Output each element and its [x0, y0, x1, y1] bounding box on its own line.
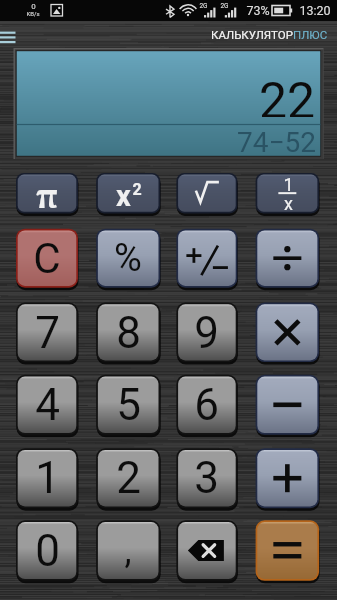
staticText: π — [36, 173, 58, 214]
button[interactable]: Divide — [256, 229, 320, 288]
button[interactable]: 6 — [176, 375, 237, 435]
button[interactable]: Pi — [16, 173, 78, 214]
staticText: 74−52 — [237, 126, 316, 152]
button[interactable]: 0 — [16, 520, 78, 581]
staticText: 6 — [194, 379, 219, 431]
button[interactable] — [14, 48, 324, 159]
staticText: x — [116, 179, 131, 213]
staticText: ПЛЮС — [293, 28, 328, 41]
button[interactable]: 1 — [16, 448, 78, 508]
staticText: 13:20 — [299, 3, 331, 18]
staticText: 2G — [220, 2, 229, 10]
staticText: 3 — [194, 452, 219, 504]
staticText: 73% — [246, 3, 270, 18]
staticText: 2 — [116, 452, 141, 504]
button[interactable]: 4 — [16, 375, 78, 435]
staticText: 1 — [35, 452, 60, 504]
staticText: x — [284, 193, 293, 212]
staticText: 1 — [283, 174, 294, 193]
staticText: 8 — [116, 307, 141, 359]
staticText: KB/s — [26, 10, 40, 17]
button[interactable]: 8 — [96, 303, 160, 363]
button[interactable]: 7 — [16, 303, 78, 363]
button[interactable]: Equals — [256, 520, 320, 581]
staticText: КАЛЬКУЛЯТОР — [211, 28, 293, 41]
button[interactable]: Reciprocal — [256, 173, 320, 214]
button[interactable]: x squared — [96, 173, 160, 214]
staticText: 4 — [35, 379, 60, 431]
button[interactable]: 2 — [96, 448, 160, 508]
button[interactable]: 9 — [176, 303, 237, 363]
staticText: 9 — [194, 307, 219, 359]
button[interactable]: Minus — [256, 375, 320, 435]
staticText: 22 — [259, 72, 316, 117]
staticText: 2G — [199, 2, 208, 10]
button[interactable]: Multiply — [256, 303, 320, 363]
staticText: C — [33, 234, 61, 283]
button[interactable]: Decimal separator — [96, 520, 160, 581]
staticText: 2 — [132, 180, 142, 199]
staticText: % — [114, 236, 142, 281]
staticText: 5 — [116, 379, 141, 431]
button[interactable]: Menu — [0, 21, 20, 48]
staticText: 0 — [31, 2, 36, 11]
staticText: 0 — [35, 525, 60, 577]
button[interactable]: Percent — [96, 229, 160, 288]
button[interactable]: 3 — [176, 448, 237, 508]
button[interactable]: Plus — [256, 448, 320, 508]
button[interactable]: Backspace — [176, 520, 237, 581]
button[interactable]: Square root — [176, 173, 237, 214]
staticText: 7 — [35, 307, 60, 359]
staticText: , — [124, 530, 132, 572]
button[interactable]: 5 — [96, 375, 160, 435]
button[interactable]: Plus minus — [176, 229, 237, 288]
button[interactable]: Clear — [16, 229, 78, 288]
